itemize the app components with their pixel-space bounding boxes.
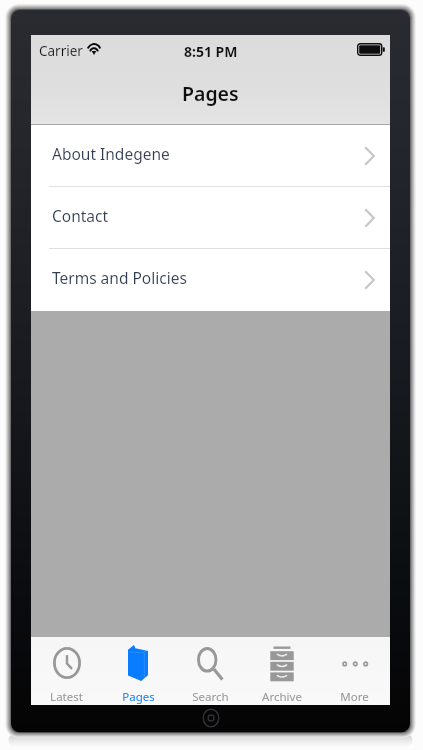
button[interactable]: Search — [174, 637, 246, 705]
button[interactable]: Pages — [102, 637, 174, 705]
button[interactable]: About Indegene — [31, 125, 390, 187]
button[interactable]: Terms and Policies — [31, 249, 390, 311]
button[interactable]: Archive — [246, 637, 318, 705]
staticText: Pages — [122, 689, 155, 705]
staticText: More — [340, 689, 369, 705]
button[interactable]: Contact — [31, 187, 390, 249]
staticText: Search — [192, 689, 229, 705]
staticText: Terms and Policies — [52, 267, 187, 288]
staticText: About Indegene — [52, 143, 170, 164]
staticText: Archive — [262, 689, 302, 705]
staticText: Pages — [182, 80, 239, 107]
button[interactable]: Latest — [31, 637, 102, 705]
staticText: Contact — [52, 205, 109, 226]
button[interactable]: More — [318, 637, 390, 705]
staticText: Carrier — [39, 42, 83, 60]
staticText: Latest — [50, 689, 83, 705]
staticText: 8:51 PM — [184, 42, 238, 61]
